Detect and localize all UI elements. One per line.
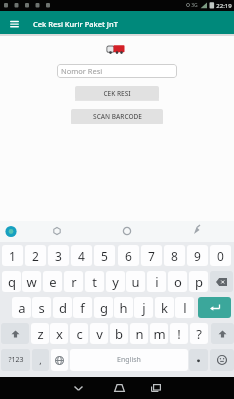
button[interactable] [198,297,231,318]
staticText: q [8,273,16,291]
staticText: g [100,299,108,317]
button[interactable]: t [85,271,104,292]
staticText: ? [196,325,202,343]
button[interactable]: 5 [94,245,115,266]
button[interactable]: 2 [25,245,46,266]
button[interactable] [6,15,22,31]
staticText: l [183,299,187,317]
staticText: CEK RESI [103,89,131,98]
button[interactable]: 8 [164,245,185,266]
button[interactable] [211,323,234,344]
staticText: ?123 [8,355,24,365]
staticText: m [153,325,166,343]
button[interactable]: k [155,297,174,318]
button[interactable]: f [73,297,92,318]
staticText: 2 [32,248,39,264]
staticText: 3 [55,248,62,264]
button[interactable]: o [168,271,187,292]
staticText: e [49,273,57,291]
staticText: w [26,273,37,291]
staticText: 6 [125,248,132,264]
staticText: 3G [191,2,198,9]
staticText: p [195,273,203,291]
staticText: o [174,273,182,291]
button[interactable]: , [32,349,49,371]
staticText: English [117,355,141,365]
button[interactable]: v [90,323,108,344]
staticText: ! [177,325,181,343]
button[interactable]: c [70,323,88,344]
button[interactable] [189,349,208,371]
staticText: f [80,299,85,317]
button[interactable]: g [94,297,113,318]
button[interactable]: r [64,271,83,292]
button[interactable] [147,378,165,398]
button[interactable]: e [43,271,62,292]
button[interactable]: 7 [141,245,162,266]
button[interactable]: ? [190,323,208,344]
staticText: 7 [148,248,155,264]
staticText: SCAN BARCODE [93,112,142,121]
staticText: 22:19 [216,2,232,10]
button[interactable]: y [106,271,125,292]
staticText: s [38,299,45,317]
button[interactable]: z [31,323,49,344]
staticText: , [39,354,42,366]
staticText: d [59,299,67,317]
button[interactable] [69,378,87,398]
staticText: a [18,299,26,317]
staticText: 5 [101,248,108,264]
button[interactable]: n [130,323,148,344]
button[interactable]: h [114,297,133,318]
button[interactable]: q [2,271,21,292]
staticText: 8 [171,248,178,264]
button[interactable]: 1 [2,245,23,266]
staticText: Cek Resi Kurir Paket JnT [33,19,118,29]
button[interactable] [51,349,68,371]
button[interactable]: m [150,323,168,344]
button[interactable]: j [134,297,153,318]
button[interactable] [210,271,233,292]
button[interactable]: 3 [48,245,69,266]
staticText: n [135,325,144,343]
staticText: z [37,325,44,343]
button[interactable]: w [22,271,41,292]
staticText: 9 [194,248,201,264]
button[interactable]: ?123 [1,349,30,371]
staticText: y [112,273,119,291]
staticText: x [56,325,63,343]
button[interactable]: ! [170,323,188,344]
button[interactable]: s [32,297,51,318]
button[interactable]: u [126,271,145,292]
staticText: t [92,273,97,291]
staticText: u [131,273,140,291]
button[interactable]: 9 [187,245,208,266]
button[interactable]: x [50,323,68,344]
button[interactable]: a [12,297,31,318]
button[interactable]: b [110,323,128,344]
button[interactable]: i [147,271,166,292]
staticText: h [119,299,128,317]
button[interactable]: Nomor Resi [57,64,177,78]
button[interactable]: 6 [118,245,139,266]
staticText: b [115,325,123,343]
staticText: 4 [78,248,85,264]
button[interactable]: CEK RESI [75,86,159,100]
button[interactable] [210,349,234,371]
button[interactable]: l [175,297,194,318]
staticText: 0 [217,248,224,264]
button[interactable]: 4 [71,245,92,266]
staticText: 1 [9,248,16,264]
staticText: r [71,273,77,291]
button[interactable] [1,323,29,344]
staticText: v [96,325,103,343]
button[interactable]: SCAN BARCODE [71,109,163,124]
staticText: c [76,325,83,343]
button[interactable]: d [53,297,72,318]
staticText: k [161,299,168,317]
button[interactable]: English [70,349,188,371]
button[interactable]: p [189,271,208,292]
staticText: Nomor Resi [61,66,103,76]
button[interactable]: 0 [210,245,231,266]
button[interactable] [110,378,128,398]
